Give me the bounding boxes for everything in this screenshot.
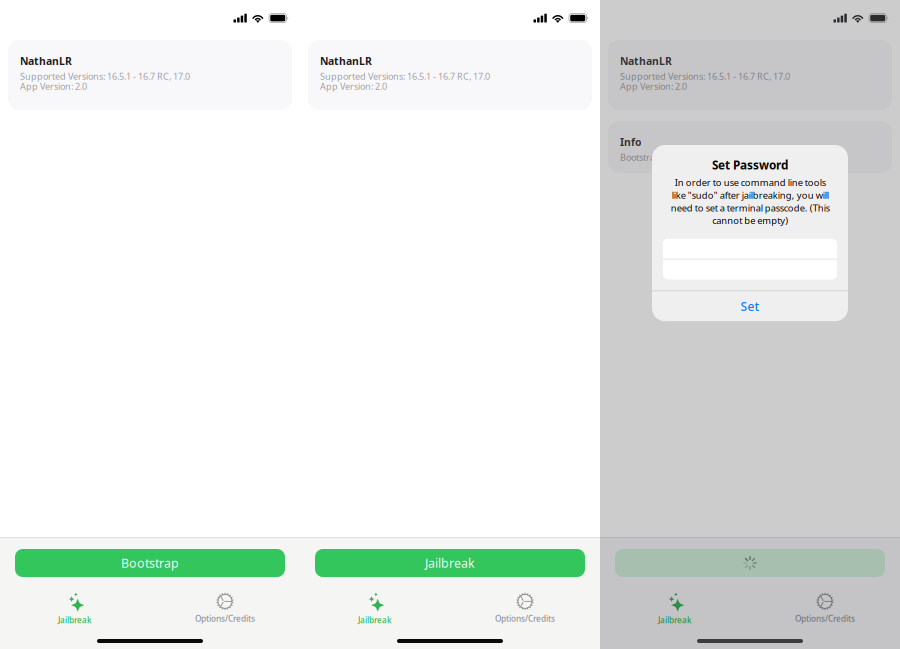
staticText: Options/Credits <box>195 613 255 624</box>
staticText: Info <box>620 135 642 149</box>
button[interactable]: Jailbreak <box>315 549 585 577</box>
staticText: NathanLR <box>20 54 72 68</box>
staticText: Jailbreak <box>658 614 692 626</box>
button[interactable]: Jailbreak <box>600 592 750 624</box>
button[interactable]: Jailbreak <box>0 592 150 624</box>
button[interactable]: Options/Credits <box>450 592 600 624</box>
button[interactable]: Options/Credits <box>150 592 300 624</box>
staticText: Set <box>740 298 759 314</box>
staticText: Supported Versions: 16.5.1 - 16.7 RC, 17… <box>320 70 490 82</box>
button[interactable] <box>615 549 885 577</box>
staticText: In order to use command line tools like … <box>670 176 829 227</box>
staticText: Options/Credits <box>495 613 555 624</box>
button[interactable]: Jailbreak <box>300 592 450 624</box>
staticText: App Version: 2.0 <box>320 80 387 92</box>
button[interactable]: Bootstrap <box>15 549 285 577</box>
staticText: Bootstrap <box>121 555 179 571</box>
staticText: Set Password <box>712 157 788 173</box>
staticText: App Version: 2.0 <box>620 80 687 92</box>
staticText: Jailbreak <box>358 614 392 626</box>
button[interactable]: Options/Credits <box>750 592 900 624</box>
staticText: NathanLR <box>620 54 672 68</box>
staticText: NathanLR <box>320 54 372 68</box>
staticText: Supported Versions: 16.5.1 - 16.7 RC, 17… <box>20 70 190 82</box>
staticText: Jailbreak <box>58 614 92 626</box>
staticText: Supported Versions: 16.5.1 - 16.7 RC, 17… <box>620 70 790 82</box>
staticText: Bootstrap Installed <box>620 151 699 163</box>
staticText: App Version: 2.0 <box>20 80 87 92</box>
staticText: Jailbreak <box>425 555 475 571</box>
staticText: Options/Credits <box>795 613 855 624</box>
button[interactable]: Set <box>652 291 848 321</box>
